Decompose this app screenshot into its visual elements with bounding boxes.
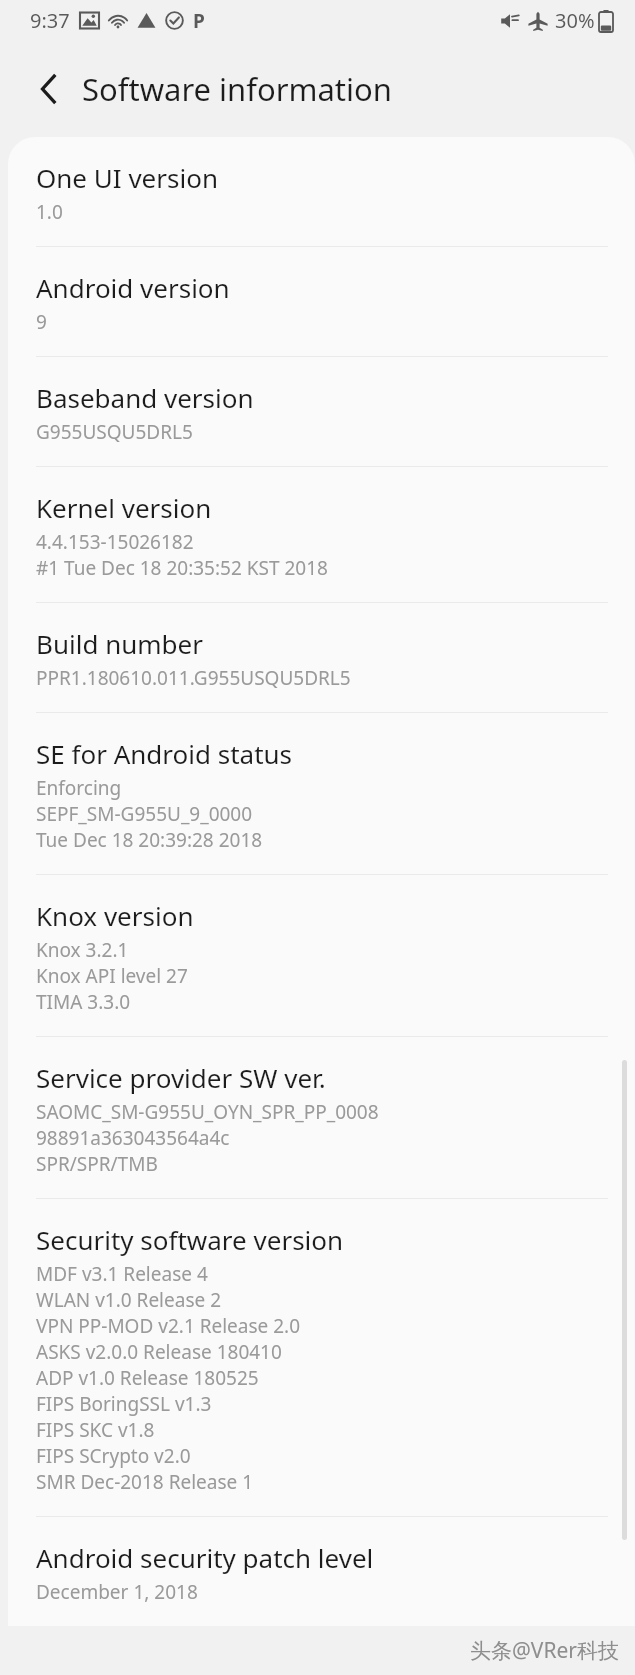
- staticText: Service provider SW ver.: [36, 1060, 326, 1095]
- staticText: SE for Android status: [36, 736, 293, 771]
- staticText: FIPS SKC v1.8: [36, 1417, 155, 1443]
- staticText: 4.4.153-15026182: [36, 529, 194, 555]
- button[interactable]: SE for Android status: [8, 713, 635, 874]
- button[interactable]: Security software version: [8, 1199, 635, 1516]
- staticText: 1.0: [36, 199, 63, 225]
- staticText: 30%: [555, 7, 595, 34]
- button[interactable]: Knox version: [8, 875, 635, 1036]
- staticText: December 1, 2018: [36, 1579, 198, 1605]
- staticText: G955USQU5DRL5: [36, 419, 193, 445]
- staticText: SMR Dec-2018 Release 1: [36, 1469, 254, 1495]
- button[interactable]: Build number: [8, 603, 635, 712]
- staticText: 头条@VRer科技: [469, 1636, 619, 1665]
- staticText: Kernel version: [36, 490, 212, 525]
- button[interactable]: Android security patch level: [8, 1517, 635, 1626]
- staticText: Knox version: [36, 898, 194, 933]
- staticText: SAOMC_SM-G955U_OYN_SPR_PP_0008: [36, 1099, 379, 1125]
- staticText: TIMA 3.3.0: [36, 989, 131, 1015]
- button[interactable]: Back: [20, 61, 76, 117]
- button[interactable]: Baseband version: [8, 357, 635, 466]
- staticText: Knox API level 27: [36, 963, 188, 989]
- staticText: P: [193, 8, 205, 34]
- button[interactable]: One UI version: [8, 137, 635, 246]
- staticText: WLAN v1.0 Release 2: [36, 1287, 222, 1313]
- staticText: SEPF_SM-G955U_9_0000: [36, 801, 253, 827]
- staticText: 98891a363043564a4c: [36, 1125, 230, 1151]
- staticText: ASKS v2.0.0 Release 180410: [36, 1339, 282, 1365]
- staticText: Security software version: [36, 1222, 344, 1257]
- button[interactable]: Service provider SW ver.: [8, 1037, 635, 1198]
- staticText: FIPS SCrypto v2.0: [36, 1443, 191, 1469]
- staticText: FIPS BoringSSL v1.3: [36, 1391, 212, 1417]
- staticText: Android version: [36, 270, 230, 305]
- staticText: Build number: [36, 626, 203, 661]
- staticText: Knox 3.2.1: [36, 937, 129, 963]
- staticText: Enforcing: [36, 775, 122, 801]
- staticText: Android security patch level: [36, 1540, 374, 1575]
- staticText: #1 Tue Dec 18 20:35:52 KST 2018: [36, 555, 328, 581]
- staticText: 9: [36, 309, 47, 335]
- button[interactable]: Android version: [8, 247, 635, 356]
- staticText: SPR/SPR/TMB: [36, 1151, 158, 1177]
- staticText: One UI version: [36, 160, 218, 195]
- staticText: PPR1.180610.011.G955USQU5DRL5: [36, 665, 351, 691]
- staticText: VPN PP-MOD v2.1 Release 2.0: [36, 1313, 301, 1339]
- staticText: ADP v1.0 Release 180525: [36, 1365, 259, 1391]
- button[interactable]: Kernel version: [8, 467, 635, 602]
- staticText: MDF v3.1 Release 4: [36, 1261, 208, 1287]
- staticText: Software information: [82, 68, 392, 110]
- staticText: Tue Dec 18 20:39:28 2018: [36, 827, 263, 853]
- staticText: Baseband version: [36, 380, 254, 415]
- staticText: 9:37: [30, 7, 70, 34]
